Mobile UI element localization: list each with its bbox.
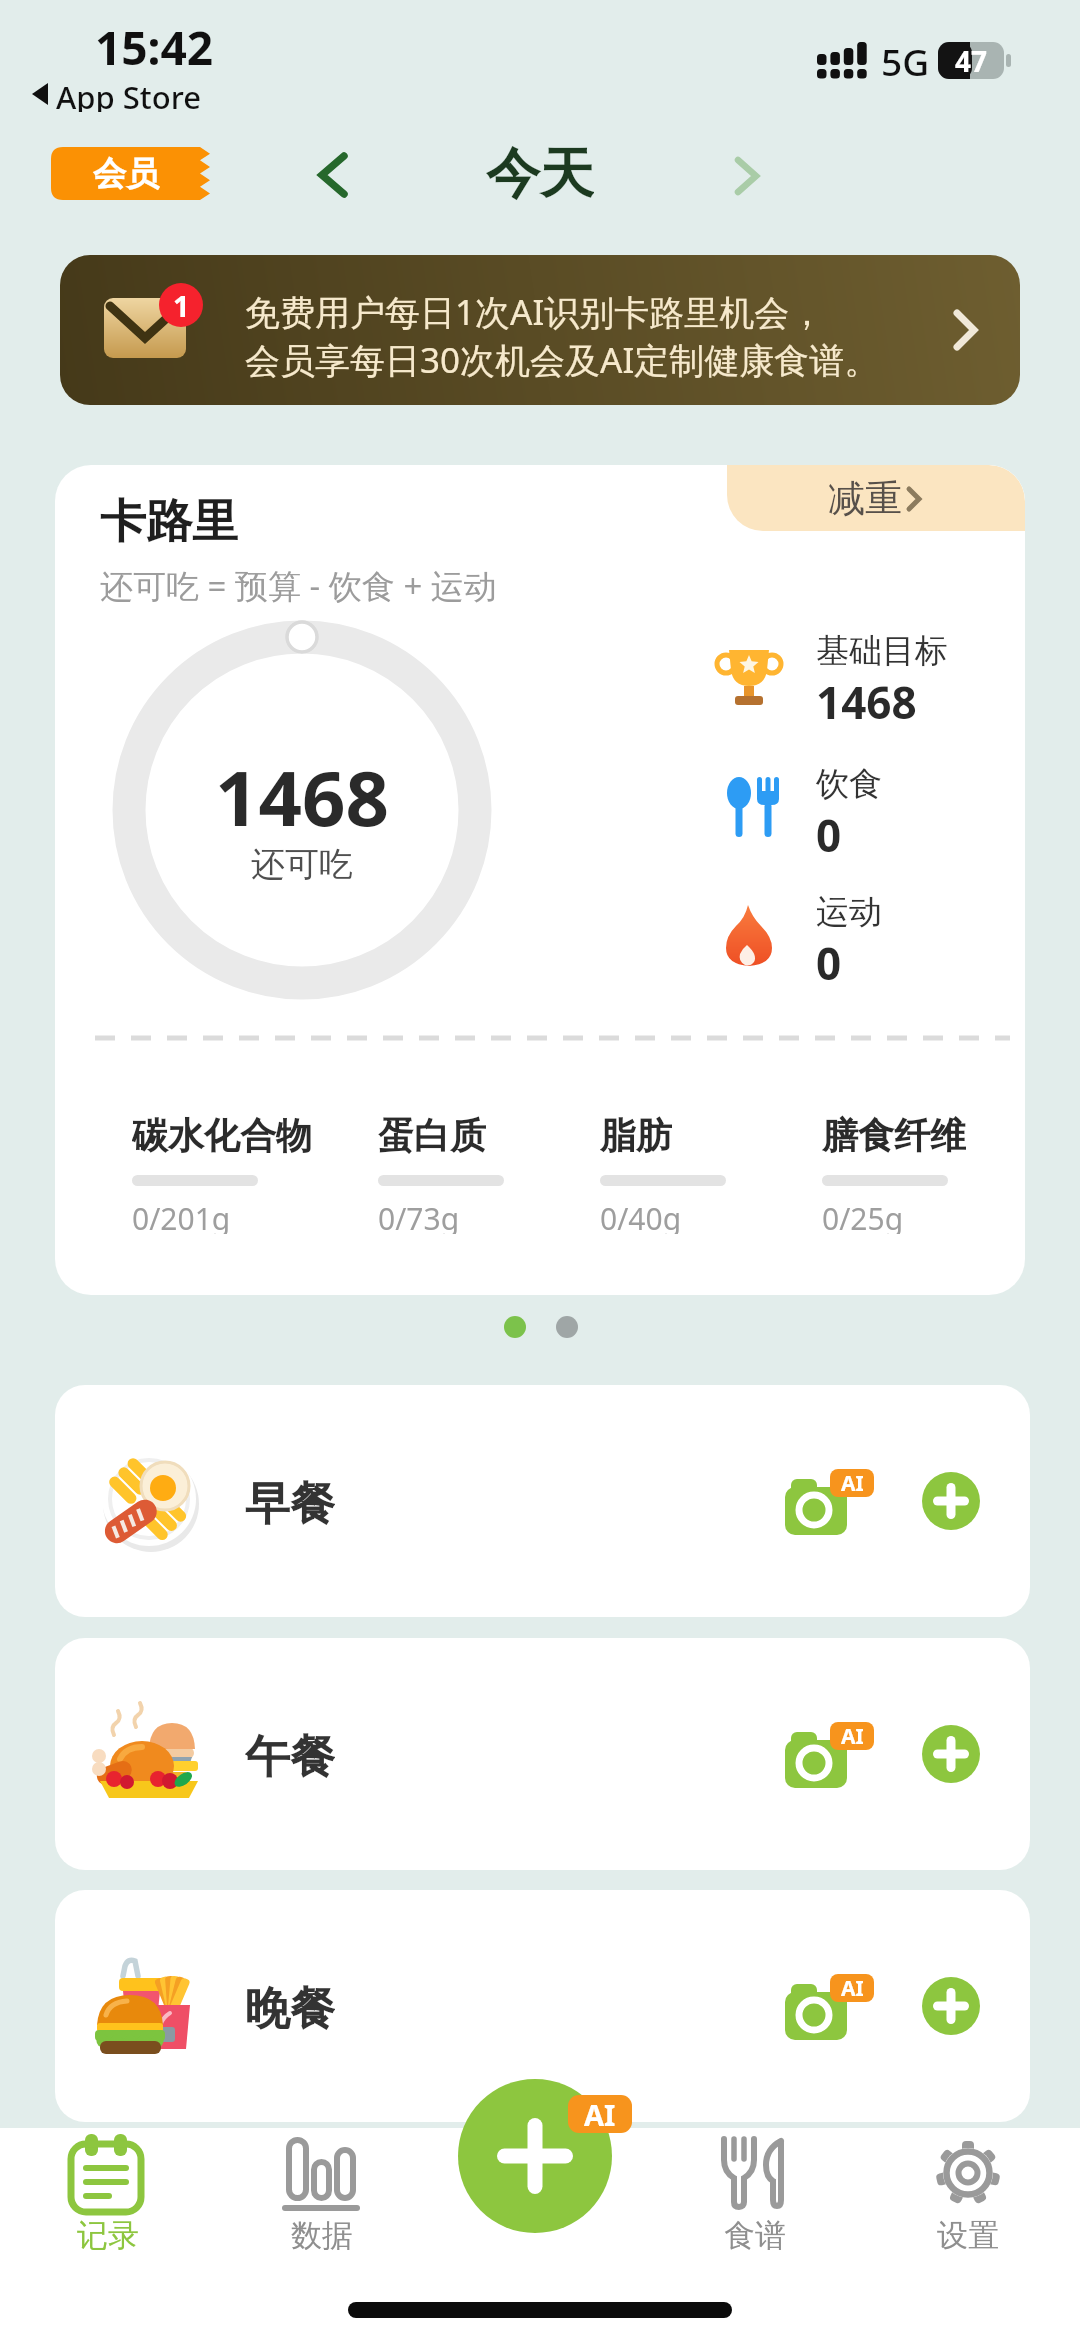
staticText: 会员享每日30次机会及AI定制健康食谱。 bbox=[245, 336, 880, 384]
staticText: 15:42 bbox=[95, 16, 214, 72]
staticText: AI bbox=[841, 1469, 864, 1497]
staticText: 0 bbox=[816, 933, 842, 993]
button[interactable] bbox=[922, 1725, 980, 1783]
staticText: 记录 bbox=[77, 2216, 139, 2250]
staticText: 午餐 bbox=[245, 1729, 335, 1779]
button[interactable]: AI bbox=[777, 1714, 882, 1806]
staticText: 0/201g bbox=[132, 1198, 231, 1234]
staticText: 饮食 bbox=[816, 763, 882, 805]
button[interactable]: 晚餐 bbox=[55, 1890, 1030, 2122]
button[interactable]: AI bbox=[452, 2073, 638, 2235]
staticText: 还可吃 = 预算 - 饮食 + 运动 bbox=[100, 563, 497, 603]
staticText: 蛋白质 bbox=[378, 1113, 486, 1157]
button[interactable]: 食谱 bbox=[695, 2130, 815, 2248]
staticText: 早餐 bbox=[245, 1476, 335, 1526]
button[interactable] bbox=[922, 1977, 980, 2035]
staticText: 食谱 bbox=[724, 2216, 786, 2250]
staticText: AI bbox=[841, 1722, 864, 1750]
button[interactable] bbox=[922, 1472, 980, 1530]
button[interactable] bbox=[315, 153, 351, 197]
button[interactable]: 设置 bbox=[908, 2130, 1028, 2248]
button[interactable] bbox=[733, 157, 763, 195]
button[interactable]: AI bbox=[777, 1461, 882, 1553]
staticText: 碳水化合物 bbox=[132, 1113, 312, 1157]
staticText: 设置 bbox=[937, 2216, 999, 2250]
staticText: 0/73g bbox=[378, 1198, 460, 1234]
button[interactable]: 午餐 bbox=[55, 1638, 1030, 1870]
staticText: 1 bbox=[173, 286, 190, 325]
button[interactable]: 早餐 bbox=[55, 1385, 1030, 1617]
staticText: 晚餐 bbox=[245, 1981, 335, 2031]
staticText: 还可吃 bbox=[251, 843, 353, 883]
staticText: 卡路里 bbox=[100, 493, 238, 543]
button[interactable]: 1 bbox=[60, 255, 1020, 405]
staticText: App Store bbox=[56, 76, 201, 112]
staticText: 5G bbox=[881, 36, 930, 80]
staticText: 1468 bbox=[215, 745, 389, 835]
staticText: 减重 bbox=[828, 475, 902, 522]
staticText: 免费用户每日1次AI识别卡路里机会， bbox=[245, 288, 825, 336]
staticText: 会员 bbox=[93, 153, 159, 195]
staticText: 脂肪 bbox=[600, 1113, 672, 1157]
button[interactable]: 数据 bbox=[262, 2130, 382, 2248]
staticText: 0 bbox=[816, 805, 842, 865]
staticText: 基础目标 bbox=[816, 630, 948, 672]
staticText: 今天 bbox=[486, 140, 594, 204]
staticText: AI bbox=[584, 2095, 616, 2133]
button[interactable]: AI bbox=[777, 1966, 882, 2058]
button[interactable]: 减重 bbox=[727, 465, 1025, 531]
staticText: 47 bbox=[955, 42, 988, 80]
staticText: 0/25g bbox=[822, 1198, 904, 1234]
staticText: 膳食纤维 bbox=[822, 1113, 966, 1157]
button[interactable]: 会员 bbox=[51, 147, 211, 200]
staticText: 数据 bbox=[291, 2216, 353, 2250]
staticText: 1468 bbox=[816, 672, 917, 732]
staticText: 0/40g bbox=[600, 1198, 682, 1234]
button[interactable]: 记录 bbox=[48, 2130, 168, 2248]
staticText: 运动 bbox=[816, 891, 882, 933]
staticText: AI bbox=[841, 1974, 864, 2002]
